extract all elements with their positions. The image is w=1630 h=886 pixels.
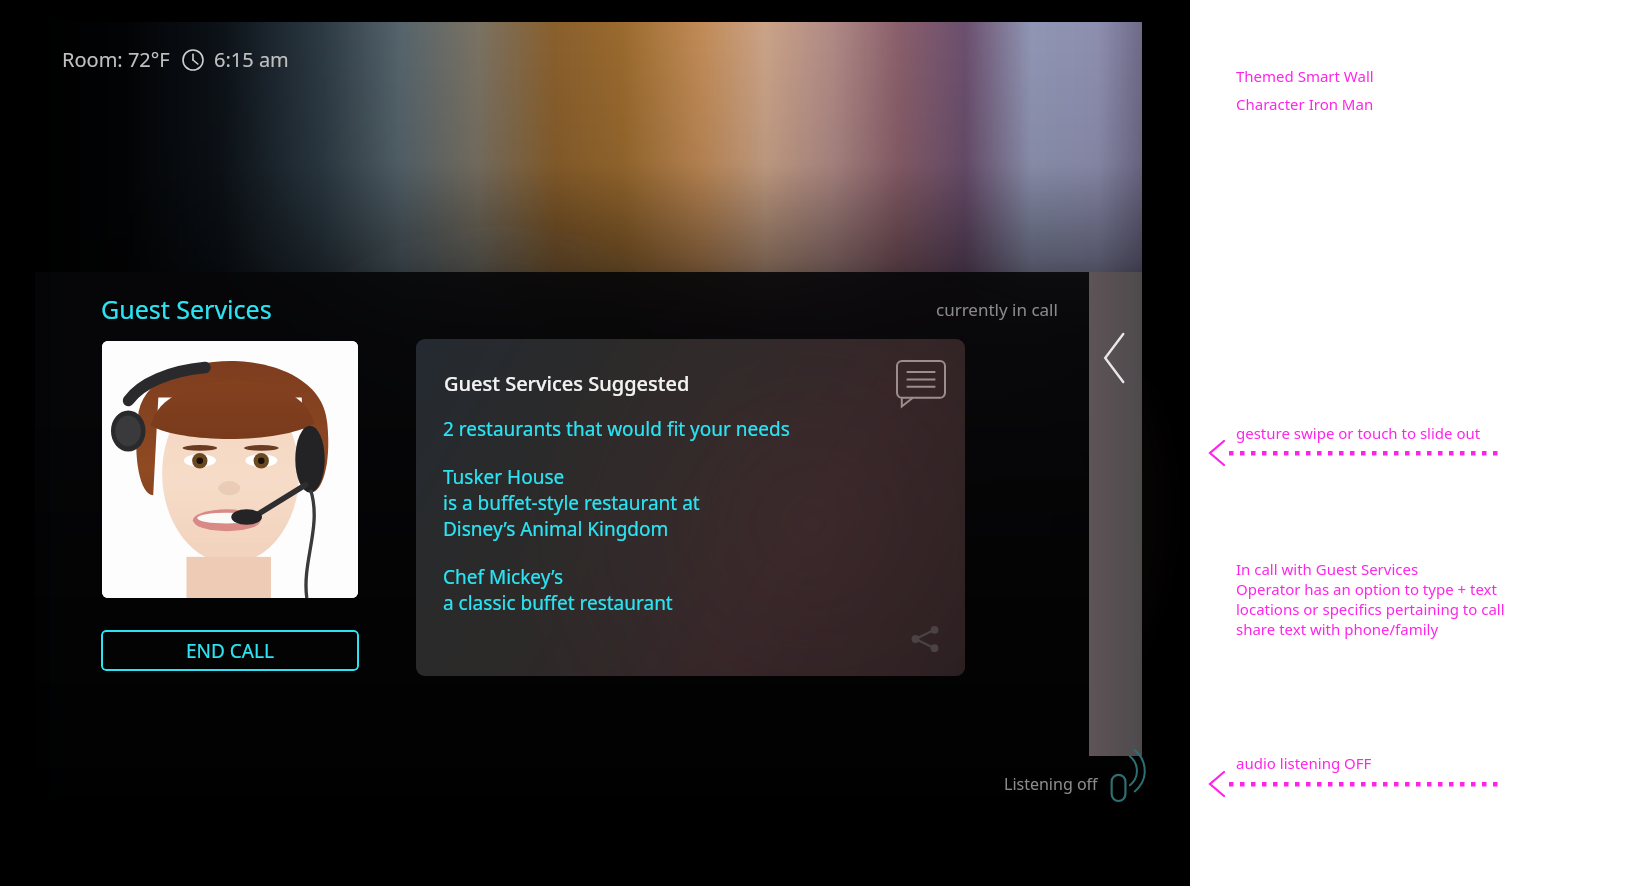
- button[interactable]: Messages: [897, 361, 945, 407]
- staticText: a classic buffet restaurant: [443, 590, 673, 616]
- staticText: Tusker House: [443, 464, 565, 490]
- staticText: END CALL: [186, 638, 274, 664]
- staticText: Disney’s Animal Kingdom: [443, 516, 669, 542]
- staticText: Character Iron Man: [1236, 94, 1374, 114]
- staticText: 6:15 am: [214, 46, 289, 73]
- staticText: Room: 72°F: [62, 46, 170, 73]
- staticText: In call with Guest Services: [1236, 559, 1419, 579]
- staticText: Chef Mickey’s: [443, 564, 563, 590]
- staticText: Guest Services Suggested: [444, 370, 690, 397]
- button[interactable]: Microphone listening off: [1096, 752, 1142, 809]
- staticText: Guest Services: [101, 292, 272, 326]
- staticText: gesture swipe or touch to slide out: [1236, 423, 1481, 443]
- staticText: is a buffet-style restaurant at: [443, 490, 700, 516]
- staticText: Listening off: [1004, 773, 1098, 795]
- staticText: Themed Smart Wall: [1236, 66, 1374, 86]
- button[interactable]: Share: [908, 622, 942, 656]
- staticText: Operator has an option to type + text: [1236, 579, 1497, 599]
- staticText: share text with phone/family: [1236, 619, 1439, 639]
- staticText: audio listening OFF: [1236, 753, 1372, 773]
- staticText: currently in call: [936, 298, 1058, 321]
- button[interactable]: Guest Services Suggested: [416, 339, 965, 676]
- button[interactable]: Slide out panel: [1089, 272, 1142, 756]
- staticText: 2 restaurants that would fit your needs: [443, 416, 790, 442]
- staticText: locations or specifics pertaining to cal…: [1236, 599, 1505, 619]
- button[interactable]: END CALL: [101, 630, 359, 671]
